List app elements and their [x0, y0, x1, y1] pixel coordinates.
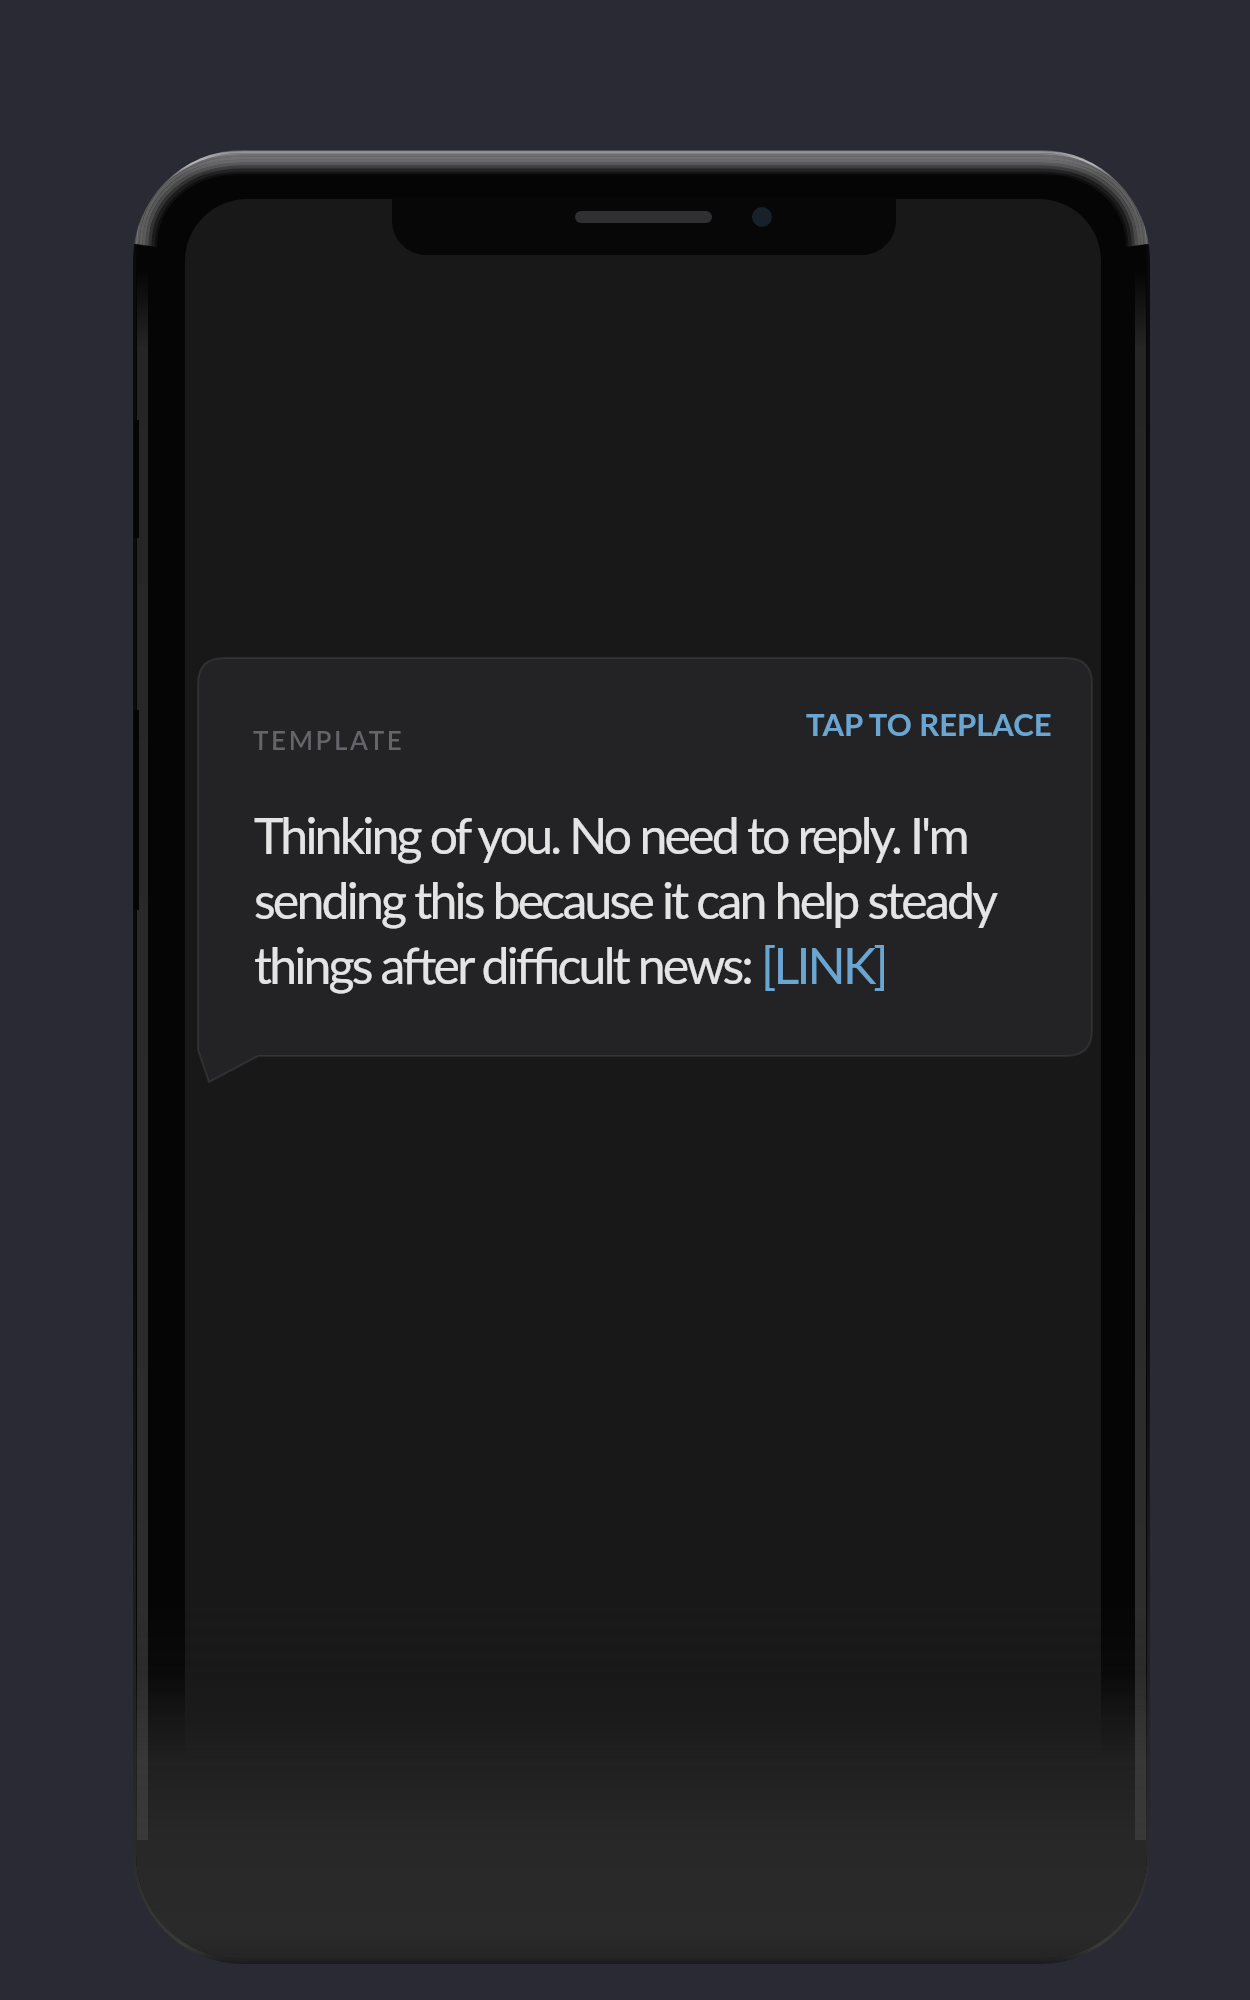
button[interactable]: TAP TO REPLACE [796, 689, 1062, 758]
button[interactable]: TEMPLATE [198, 658, 1092, 1056]
staticText: things after difficult news: [LINK] [254, 935, 886, 995]
staticText: sending this because it can help steady [254, 870, 996, 930]
staticText: TAP TO REPLACE [806, 705, 1052, 742]
staticText: TEMPLATE [253, 724, 405, 755]
staticText: Thinking of you. No need to reply. I'm [254, 805, 967, 865]
